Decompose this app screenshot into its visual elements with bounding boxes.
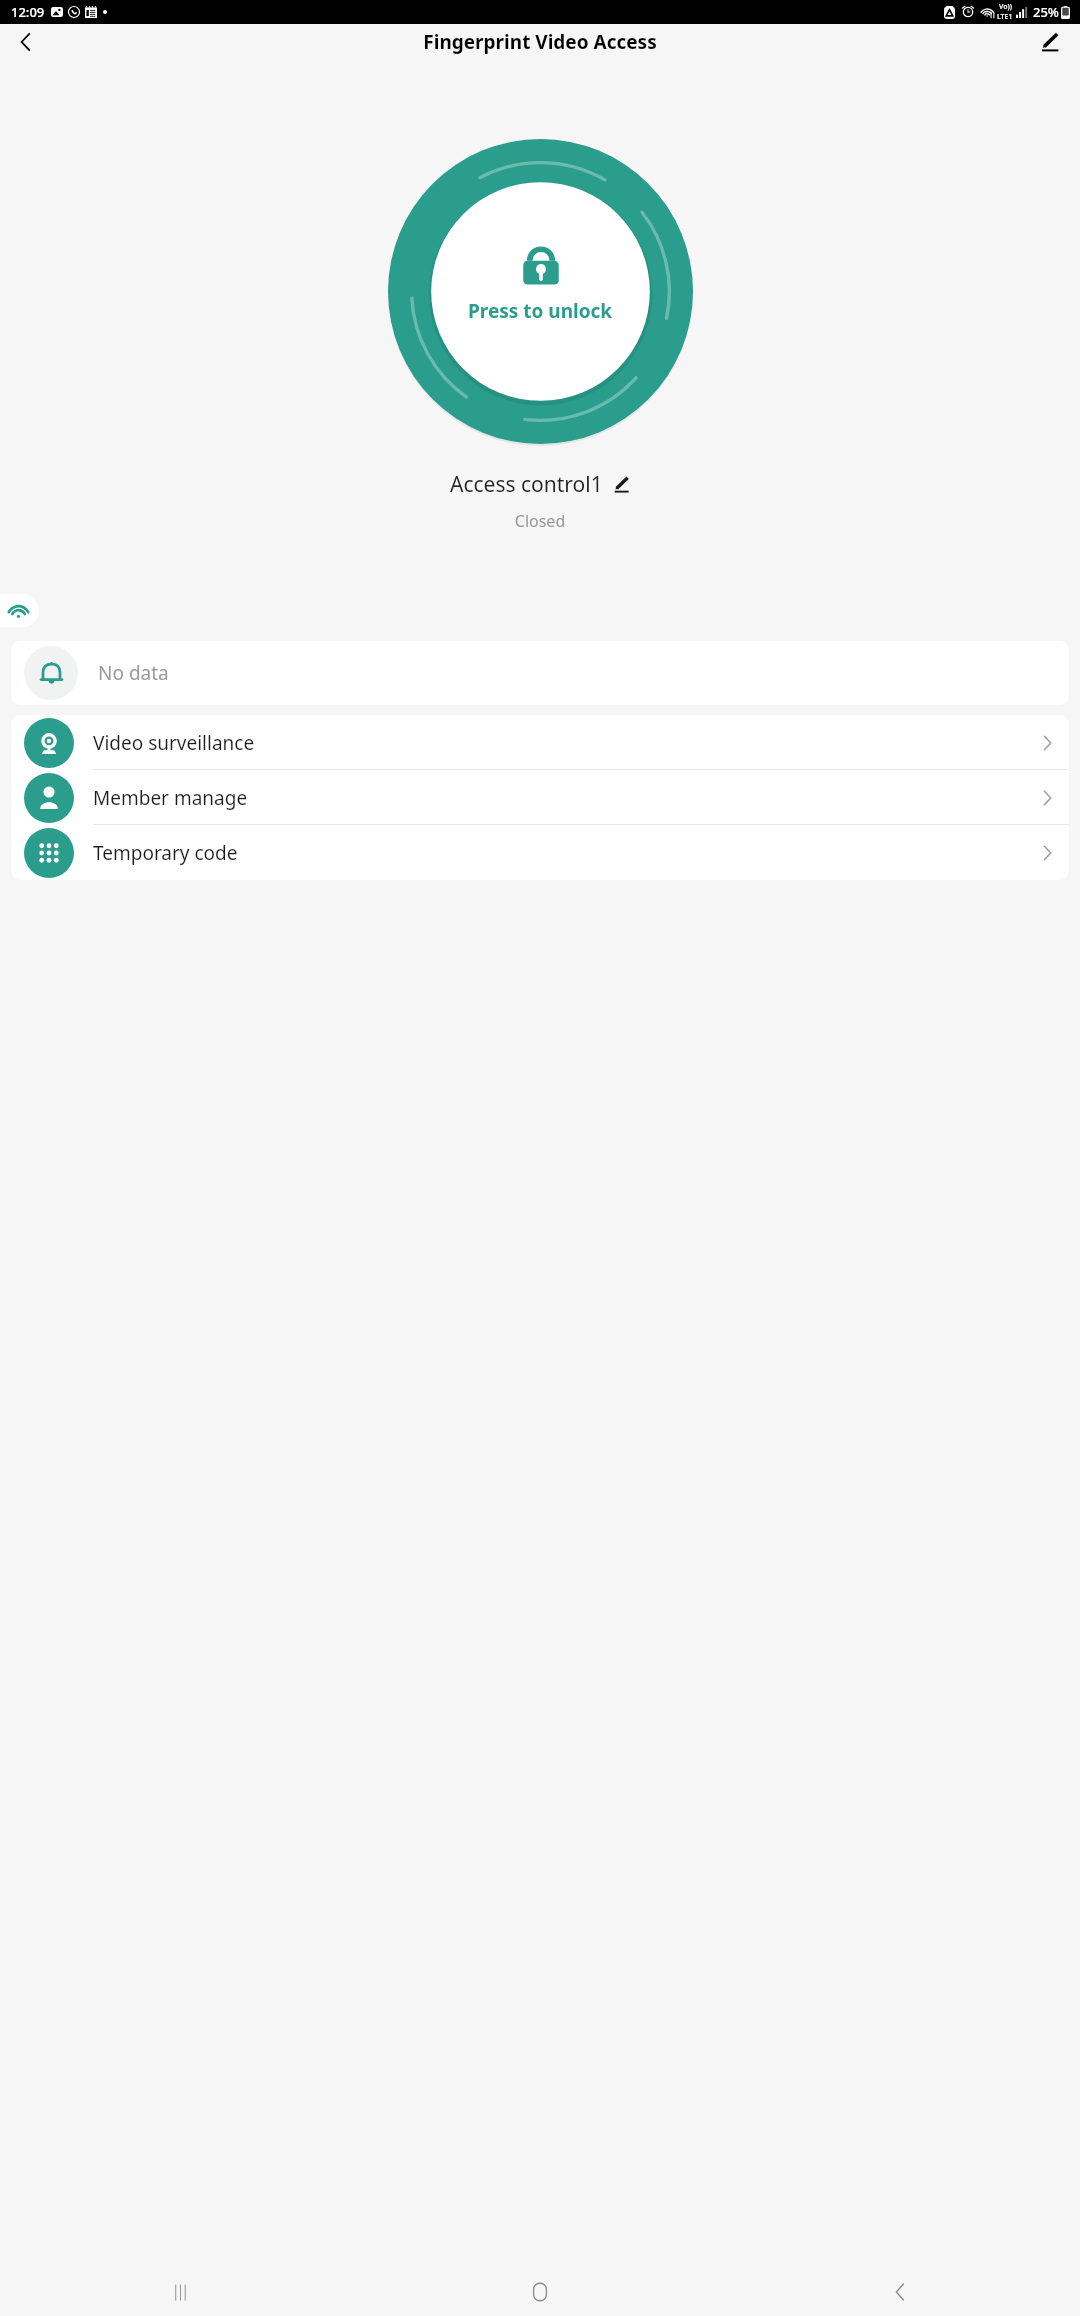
button[interactable]: No data [11,641,1069,705]
staticText: 12:09 [11,3,45,21]
staticText: Closed [0,510,1080,532]
button[interactable]: Home [360,2268,720,2316]
button[interactable]: Recent apps [0,2268,360,2316]
staticText: Access control1 [450,470,603,499]
staticText: 25% [1033,3,1059,21]
button[interactable]: Temporary code [11,825,1069,880]
staticText: Video surveillance [93,730,1043,756]
button[interactable]: Access control1 [446,468,634,501]
button[interactable]: Member manage [11,770,1069,825]
staticText: No data [98,660,169,686]
staticText: LTE1 [997,12,1013,22]
button[interactable]: Wi-Fi status [0,594,39,627]
button[interactable]: Edit [1028,24,1072,60]
staticText: Member manage [93,785,1043,811]
staticText: Temporary code [93,840,1043,866]
button[interactable]: Back [4,24,48,60]
staticText: Fingerprint Video Access [423,29,657,55]
button[interactable]: Back [720,2268,1080,2316]
staticText: Vo)) [999,2,1012,12]
staticText: Press to unlock [468,298,613,324]
button[interactable]: Video surveillance [11,715,1069,770]
button[interactable]: Press to unlock [388,139,693,444]
